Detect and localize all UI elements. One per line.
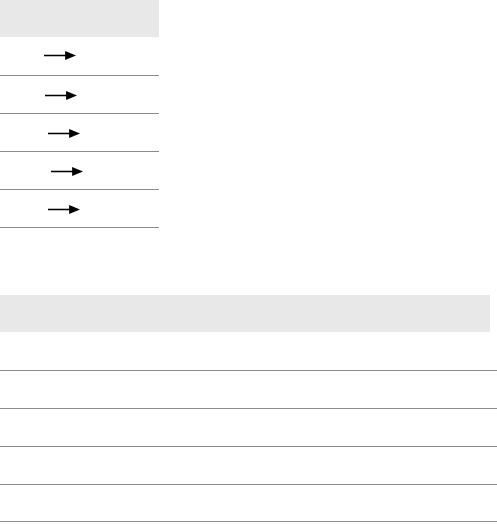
button[interactable]: Row 2 [0,76,159,113]
button[interactable]: Row 5 [0,190,159,227]
button[interactable]: Row 4 [0,152,159,189]
button[interactable]: Row 3 [0,114,159,151]
button[interactable]: Row 1 [0,37,159,75]
